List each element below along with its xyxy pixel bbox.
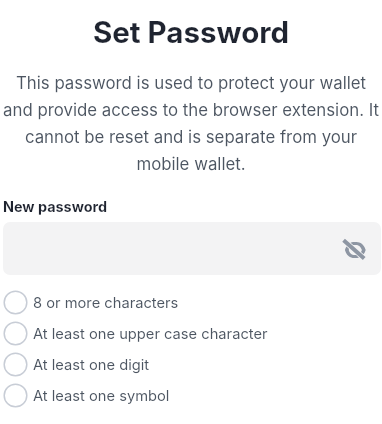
staticText: At least one upper case character [33,325,268,343]
button[interactable]: Show password [341,236,367,262]
button[interactable]: 8 or more characters [3,287,381,318]
button[interactable]: At least one upper case character [3,318,381,349]
staticText: At least one symbol [33,387,170,405]
staticText: Set Password [0,14,382,50]
button[interactable]: Show password [3,222,381,275]
staticText: New password [3,198,108,215]
staticText: 8 or more characters [33,294,179,312]
staticText: At least one digit [33,356,150,374]
button[interactable]: At least one digit [3,349,381,380]
staticText: This password is used to protect your wa… [0,73,382,175]
button[interactable]: At least one symbol [3,380,381,411]
